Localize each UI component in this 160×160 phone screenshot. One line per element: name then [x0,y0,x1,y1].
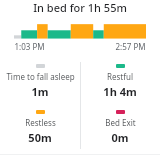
staticText: 1:03 PM [14,41,45,52]
staticText: Bed Exit [105,117,136,128]
button[interactable]: Restful legend colour [80,60,160,99]
other: Bed Exit legend colour [116,110,125,114]
staticText: 1h 4m [103,84,137,99]
other: Restful legend colour [116,64,125,68]
other: Time to fall asleep legend colour [36,64,45,68]
staticText: In bed for 1h 55m [33,0,127,15]
button[interactable]: Bed Exit legend colour [80,106,160,145]
other: Restless legend colour [36,110,45,114]
staticText: Restless [25,117,56,128]
button[interactable]: Time to fall asleep legend colour [0,60,80,99]
staticText: Restful [107,71,133,82]
staticText: 1m [31,84,49,99]
button[interactable]: Sleep stages chart [0,22,160,40]
staticText: Time to fall asleep [6,71,75,82]
staticText: 0m [111,130,129,145]
staticText: 2:57 PM [115,41,146,52]
button[interactable]: Restless legend colour [0,106,80,145]
staticText: 50m [28,130,52,145]
